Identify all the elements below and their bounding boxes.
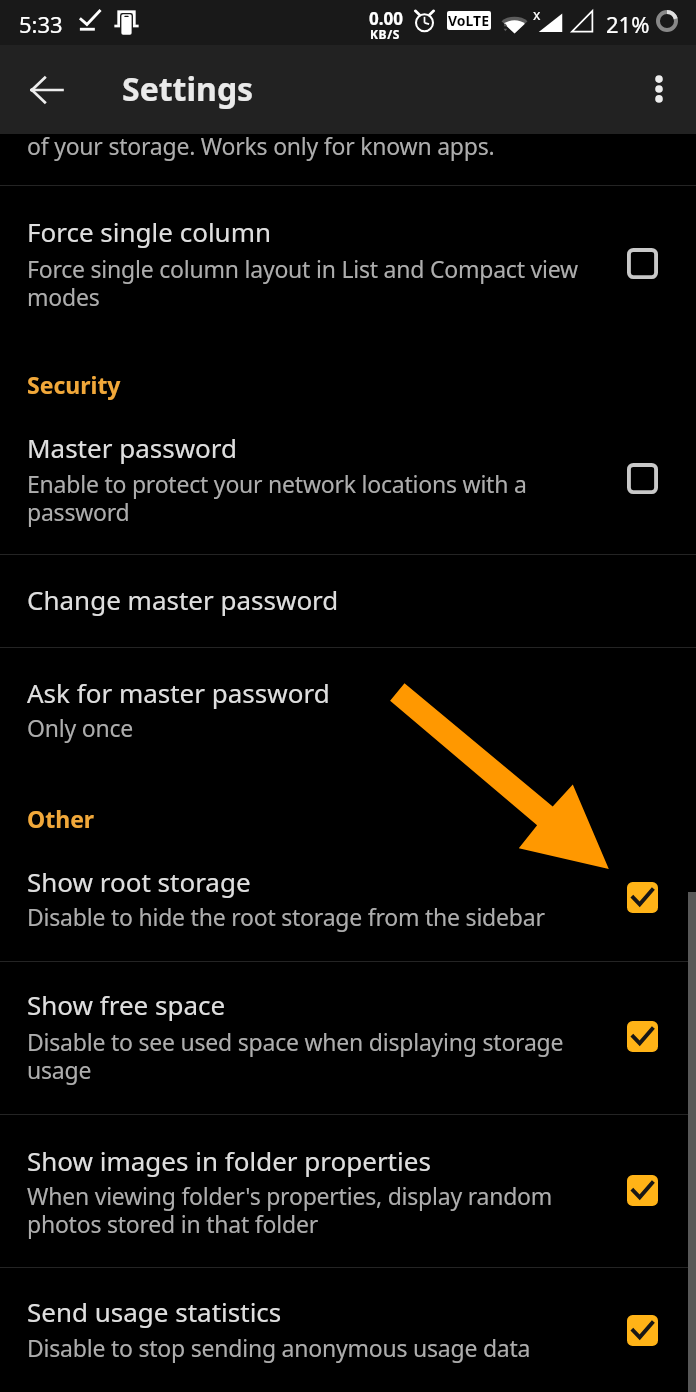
staticText: Settings — [122, 67, 254, 111]
button[interactable]: Show images in folder properties — [614, 1162, 670, 1218]
button[interactable] — [0, 648, 696, 838]
staticText: Force single column layout in List and C… — [27, 253, 593, 313]
staticText: 0.00 — [369, 7, 403, 30]
staticText: 21% — [606, 9, 650, 39]
button[interactable] — [0, 1268, 696, 1392]
staticText: Disable to stop sending anonymous usage … — [27, 1332, 593, 1363]
staticText: Force single column — [27, 214, 593, 249]
button[interactable] — [0, 1115, 696, 1267]
staticText: Change master password — [27, 582, 593, 617]
staticText: Show root storage — [27, 864, 593, 899]
staticText: x — [533, 5, 541, 24]
button[interactable]: Send usage statistics — [614, 1302, 670, 1358]
staticText: KB/S — [370, 26, 400, 42]
staticText: Security — [27, 369, 121, 400]
button[interactable]: Show free space — [614, 1008, 670, 1064]
staticText: Send usage statistics — [27, 1294, 593, 1329]
button[interactable] — [0, 838, 696, 961]
staticText: When viewing folder's properties, displa… — [27, 1180, 593, 1240]
button[interactable] — [0, 962, 696, 1114]
staticText: Enable to protect your network locations… — [27, 468, 593, 528]
staticText: Show images in folder properties — [27, 1143, 593, 1178]
staticText: Disable to hide the root storage from th… — [27, 901, 593, 932]
staticText: Ask for master password — [27, 675, 593, 710]
button[interactable]: Navigate up — [19, 62, 75, 118]
button[interactable]: More options — [631, 61, 687, 117]
button[interactable]: Force single column — [614, 235, 670, 291]
staticText: 5:33 — [19, 9, 63, 39]
staticText: of your storage. Works only for known ap… — [27, 130, 593, 161]
button[interactable] — [0, 404, 696, 554]
button[interactable]: Show root storage — [614, 869, 670, 925]
button[interactable] — [0, 186, 696, 372]
button[interactable] — [0, 556, 696, 647]
staticText: Show free space — [27, 987, 593, 1022]
staticText: Only once — [27, 712, 593, 743]
staticText: Other — [27, 803, 95, 834]
button[interactable]: Master password — [614, 450, 670, 506]
staticText: Master password — [27, 430, 593, 465]
staticText: Disable to see used space when displayin… — [27, 1026, 593, 1086]
staticText: VoLTE — [448, 11, 490, 30]
